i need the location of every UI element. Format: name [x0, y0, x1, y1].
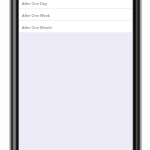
button[interactable]: After One Week [19, 9, 132, 21]
button[interactable]: After One Month [19, 21, 132, 33]
staticText: After One Week [22, 13, 50, 18]
button[interactable]: After One Day [19, 0, 132, 9]
staticText: After One Day [22, 1, 47, 6]
staticText: After One Month [22, 25, 52, 30]
